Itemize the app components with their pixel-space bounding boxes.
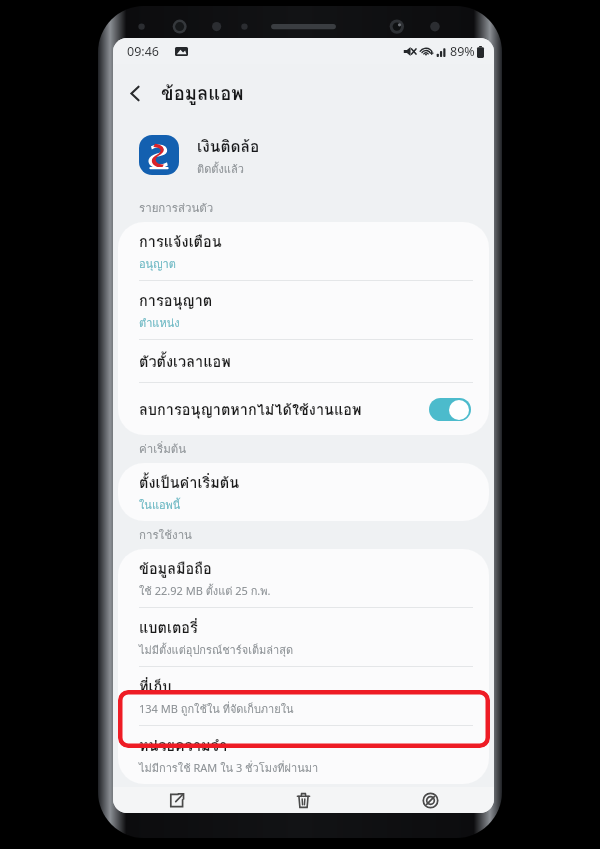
- button[interactable]: ตั้งเป็นค่าเริ่มต้น: [118, 463, 489, 521]
- button[interactable]: ที่เก็บ: [118, 667, 489, 725]
- staticText: 09:46: [127, 43, 159, 60]
- staticText: การอนุญาต: [139, 289, 213, 312]
- staticText: ตำแหน่ง: [139, 314, 180, 331]
- staticText: ลบการอนุญาตหากไม่ได้ใช้งานแอพ: [139, 398, 429, 421]
- staticText: แบตเตอรี่: [139, 616, 198, 639]
- button[interactable]: Back: [113, 71, 157, 115]
- staticText: การแจ้งเตือน: [139, 230, 222, 253]
- button[interactable]: หน่วยความจำ: [118, 726, 489, 784]
- staticText: 134 MB ถูกใช้ใน ที่จัดเก็บภายใน: [139, 700, 294, 717]
- staticText: ไม่มีการใช้ RAM ใน 3 ชั่วโมงที่ผ่านมา: [139, 759, 319, 776]
- staticText: ข้อมูลแอพ: [161, 79, 244, 108]
- staticText: ตัวตั้งเวลาแอพ: [139, 350, 231, 373]
- staticText: รายการส่วนตัว: [139, 199, 214, 217]
- staticText: การใช้งาน: [139, 526, 192, 544]
- staticText: ข้อมูลมือถือ: [139, 557, 212, 580]
- staticText: เงินติดล้อ: [197, 134, 260, 159]
- button[interactable]: Uninstall: [240, 787, 367, 813]
- button[interactable]: Force stop: [367, 787, 494, 813]
- staticText: ตั้งเป็นค่าเริ่มต้น: [139, 471, 240, 494]
- staticText: 89%: [450, 43, 475, 60]
- button[interactable]: Open: [113, 787, 240, 813]
- staticText: ใช้ 22.92 MB ตั้งแต่ 25 ก.พ.: [139, 582, 271, 599]
- staticText: หน่วยความจำ: [139, 734, 228, 757]
- staticText: ติดตั้งแล้ว: [197, 160, 244, 177]
- staticText: ไม่มีตั้งแต่อุปกรณ์ชาร์จเต็มล่าสุด: [139, 641, 294, 658]
- staticText: ค่าเริ่มต้น: [139, 440, 187, 458]
- staticText: ที่เก็บ: [139, 675, 172, 698]
- button[interactable]: แบตเตอรี่: [118, 608, 489, 666]
- button[interactable]: ลบการอนุญาตหากไม่ได้ใช้งานแอพ: [118, 383, 489, 435]
- button[interactable]: ตัวตั้งเวลาแอพ: [118, 340, 489, 382]
- staticText: อนุญาต: [139, 255, 176, 272]
- staticText: ในแอพนี้: [139, 496, 181, 513]
- button[interactable]: การแจ้งเตือน: [118, 222, 489, 280]
- button[interactable]: การอนุญาต: [118, 281, 489, 339]
- button[interactable]: ข้อมูลมือถือ: [118, 549, 489, 607]
